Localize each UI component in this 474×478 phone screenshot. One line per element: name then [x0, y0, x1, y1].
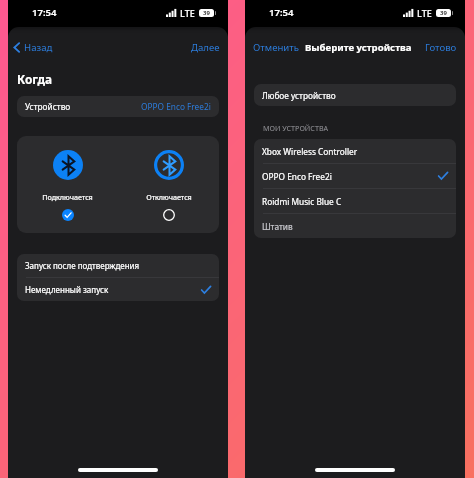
staticText: Штатив: [262, 221, 293, 232]
staticText: Немедленный запуск: [25, 284, 109, 295]
button[interactable]: Штатив: [254, 214, 456, 238]
staticText: Xbox Wireless Controller: [262, 146, 358, 157]
staticText: 17:54: [32, 6, 57, 19]
staticText: 39: [203, 9, 210, 17]
staticText: 17:54: [269, 6, 294, 19]
staticText: МОИ УСТРОЙСТВА: [263, 123, 329, 133]
button[interactable]: OPPO Enco Free2i: [254, 164, 456, 188]
button[interactable]: Любое устройство: [254, 84, 456, 106]
staticText: LTE: [417, 7, 432, 19]
button[interactable]: Xbox Wireless Controller: [254, 139, 456, 163]
staticText: Когда: [17, 71, 52, 87]
staticText: OPPO Enco Free2i: [262, 171, 332, 182]
staticText: Выберите устройства: [305, 41, 412, 54]
button[interactable]: Запуск после подтверждения: [17, 254, 219, 277]
staticText: LTE: [180, 7, 195, 19]
staticText: Запуск после подтверждения: [25, 260, 140, 271]
button[interactable]: Назад: [8, 38, 57, 57]
button[interactable]: Устройство: [17, 96, 219, 117]
staticText: 39: [440, 9, 447, 17]
button[interactable]: Отключается: [118, 136, 219, 233]
staticText: Roidmi Music Blue C: [262, 196, 342, 207]
staticText: Назад: [24, 41, 53, 54]
staticText: Устройство: [25, 101, 71, 112]
button[interactable]: Roidmi Music Blue C: [254, 189, 456, 213]
button[interactable]: Готово: [425, 38, 457, 57]
staticText: Подключается: [42, 192, 93, 202]
staticText: Отключается: [146, 192, 192, 202]
staticText: OPPO Enco Free2i: [141, 101, 211, 112]
button[interactable]: Немедленный запуск: [17, 278, 219, 301]
button[interactable]: Отменить: [253, 38, 299, 57]
button[interactable]: Далее: [187, 38, 228, 57]
staticText: Любое устройство: [262, 90, 336, 101]
button[interactable]: Подключается: [17, 136, 118, 233]
